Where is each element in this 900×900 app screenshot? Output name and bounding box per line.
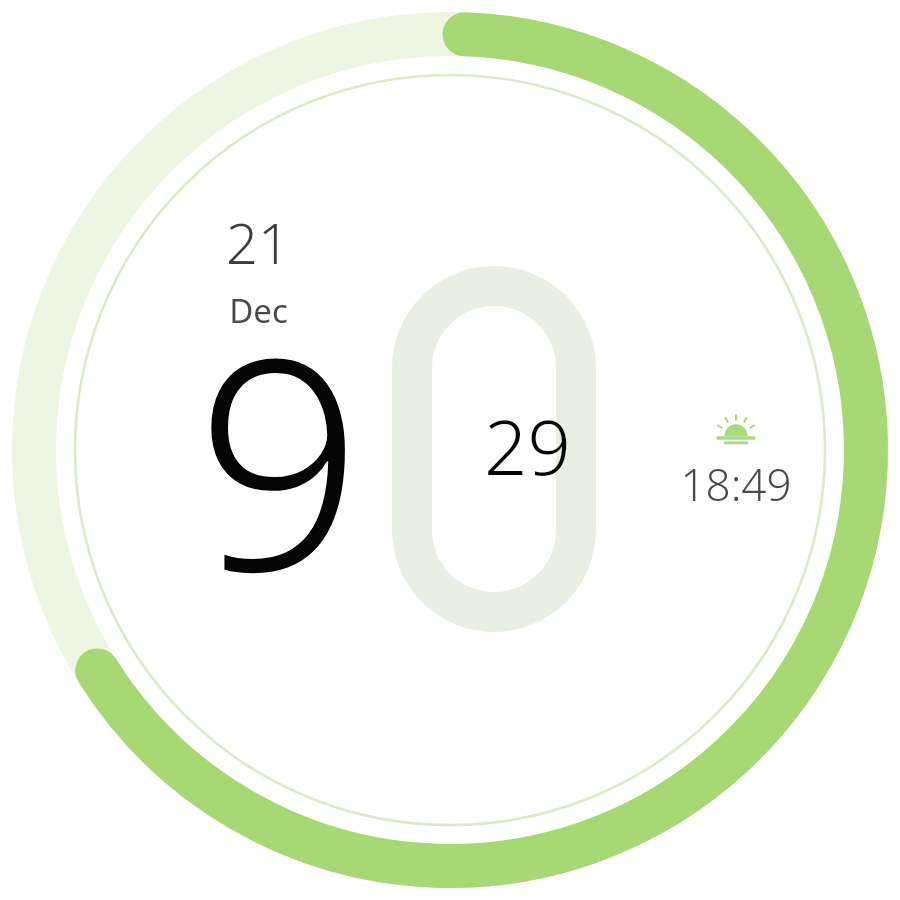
staticText: Dec bbox=[229, 288, 288, 333]
button[interactable]: 29 bbox=[484, 394, 571, 498]
button[interactable]: 21 bbox=[226, 204, 290, 333]
button[interactable]: 9 bbox=[0, 0, 900, 900]
staticText: 9 bbox=[196, 258, 363, 656]
staticText: 21 bbox=[226, 204, 290, 280]
button[interactable]: Sunset time bbox=[676, 412, 796, 522]
staticText: 18:49 bbox=[680, 454, 792, 514]
staticText: 29 bbox=[484, 394, 571, 498]
